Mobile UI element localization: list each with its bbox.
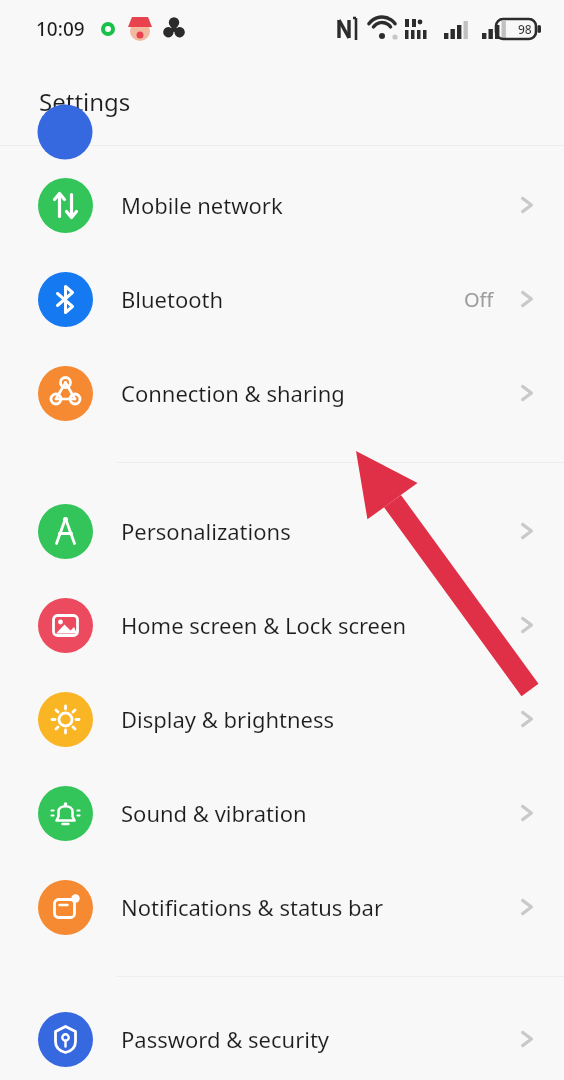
button[interactable]: Notifications & status bar bbox=[0, 860, 564, 954]
staticText: 98 bbox=[518, 21, 532, 37]
button[interactable]: Connection & sharing bbox=[0, 346, 564, 440]
staticText: Off bbox=[464, 286, 494, 313]
staticText: Mobile network bbox=[121, 190, 516, 220]
button[interactable]: Bluetooth bbox=[0, 252, 564, 346]
staticText: Display & brightness bbox=[121, 704, 516, 734]
button[interactable]: Home screen & Lock screen bbox=[0, 578, 564, 672]
staticText: 10:09 bbox=[36, 16, 85, 42]
button[interactable]: Password & security bbox=[0, 998, 564, 1080]
staticText: Settings bbox=[39, 85, 131, 118]
button[interactable]: Sound & vibration bbox=[0, 766, 564, 860]
staticText: Password & security bbox=[121, 1024, 516, 1054]
button[interactable]: Display & brightness bbox=[0, 672, 564, 766]
staticText: Personalizations bbox=[121, 516, 516, 546]
staticText: Bluetooth bbox=[121, 284, 464, 314]
staticText: Connection & sharing bbox=[121, 378, 516, 408]
button[interactable]: Personalizations bbox=[0, 484, 564, 578]
button[interactable]: Mobile network bbox=[0, 158, 564, 252]
staticText: Notifications & status bar bbox=[121, 892, 516, 922]
staticText: Sound & vibration bbox=[121, 798, 516, 828]
staticText: Home screen & Lock screen bbox=[121, 610, 516, 640]
